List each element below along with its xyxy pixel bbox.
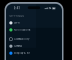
staticText: Wi-Fi xyxy=(14,21,20,24)
button[interactable]: Accessibility xyxy=(6,36,62,43)
staticText: Display & Br xyxy=(14,52,30,55)
staticText: Notifications xyxy=(14,28,30,31)
staticText: 9:41 xyxy=(13,6,19,10)
button[interactable]: Display & Br xyxy=(6,50,62,57)
button[interactable]: Wi-Fi xyxy=(6,19,62,26)
staticText: SETTINGS xyxy=(9,14,24,18)
button[interactable]: General xyxy=(6,43,62,50)
staticText: Accessibility xyxy=(14,38,29,41)
button[interactable]: Notifications xyxy=(6,26,62,33)
staticText: General xyxy=(14,45,22,48)
